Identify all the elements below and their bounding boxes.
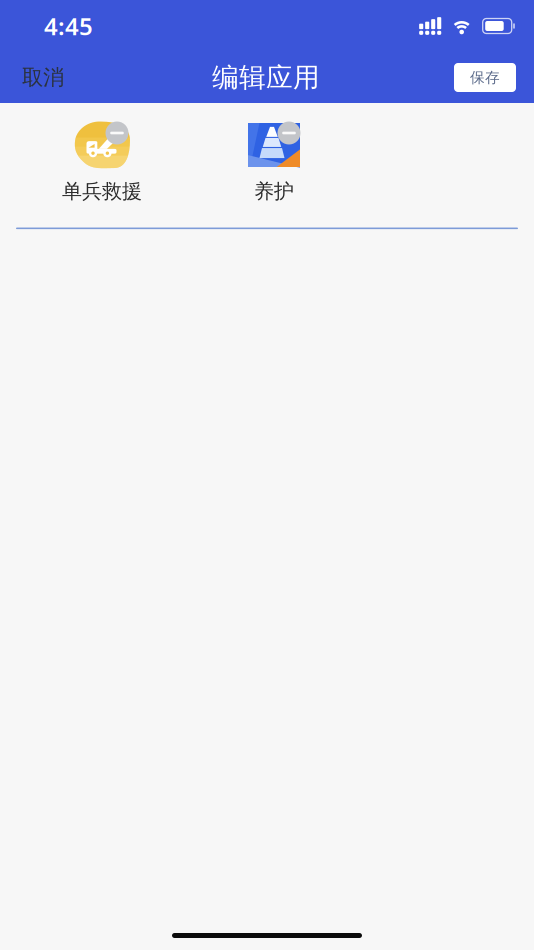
staticText: 取消	[22, 64, 64, 91]
staticText: 养护	[254, 179, 294, 204]
button[interactable]: 单兵救援	[16, 114, 188, 204]
staticText: 单兵救援	[62, 179, 142, 204]
staticText: 编辑应用	[212, 61, 320, 94]
button[interactable]: Remove 养护	[277, 121, 300, 144]
button[interactable]: Remove 单兵救援	[105, 121, 128, 144]
button[interactable]: 保存	[454, 63, 516, 92]
button[interactable]: 取消	[22, 56, 78, 99]
button[interactable]: 养护	[188, 114, 360, 204]
staticText: 保存	[470, 68, 500, 86]
staticText: 4:45	[44, 10, 93, 42]
